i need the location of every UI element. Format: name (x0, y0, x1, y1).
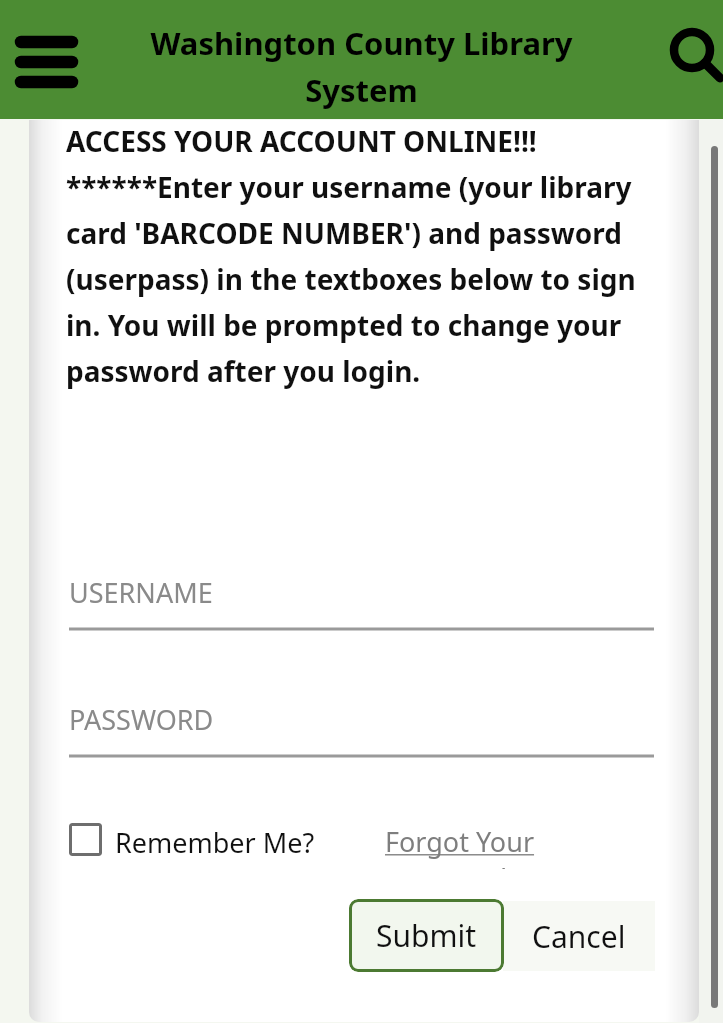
button[interactable]: USERNAME (66, 568, 656, 634)
staticText: Submit (376, 915, 477, 956)
button[interactable]: PASSWORD (66, 695, 656, 761)
button[interactable]: Open navigation menu (8, 9, 96, 101)
staticText: Cancel (532, 916, 626, 957)
button[interactable]: Forgot Your Password (383, 818, 653, 864)
button[interactable]: Cancel (503, 901, 655, 971)
staticText: Washington County Library System (110, 22, 613, 116)
staticText: PASSWORD (69, 701, 214, 738)
button[interactable]: Remember Me? (62, 813, 307, 867)
button[interactable]: Search (651, 10, 723, 102)
staticText: ACCESS YOUR ACCOUNT ONLINE!!!******Enter… (66, 122, 666, 390)
staticText: Forgot Your Password (385, 823, 655, 869)
staticText: USERNAME (69, 574, 213, 611)
staticText: Remember Me? (115, 824, 315, 861)
button[interactable]: Submit (349, 899, 504, 972)
